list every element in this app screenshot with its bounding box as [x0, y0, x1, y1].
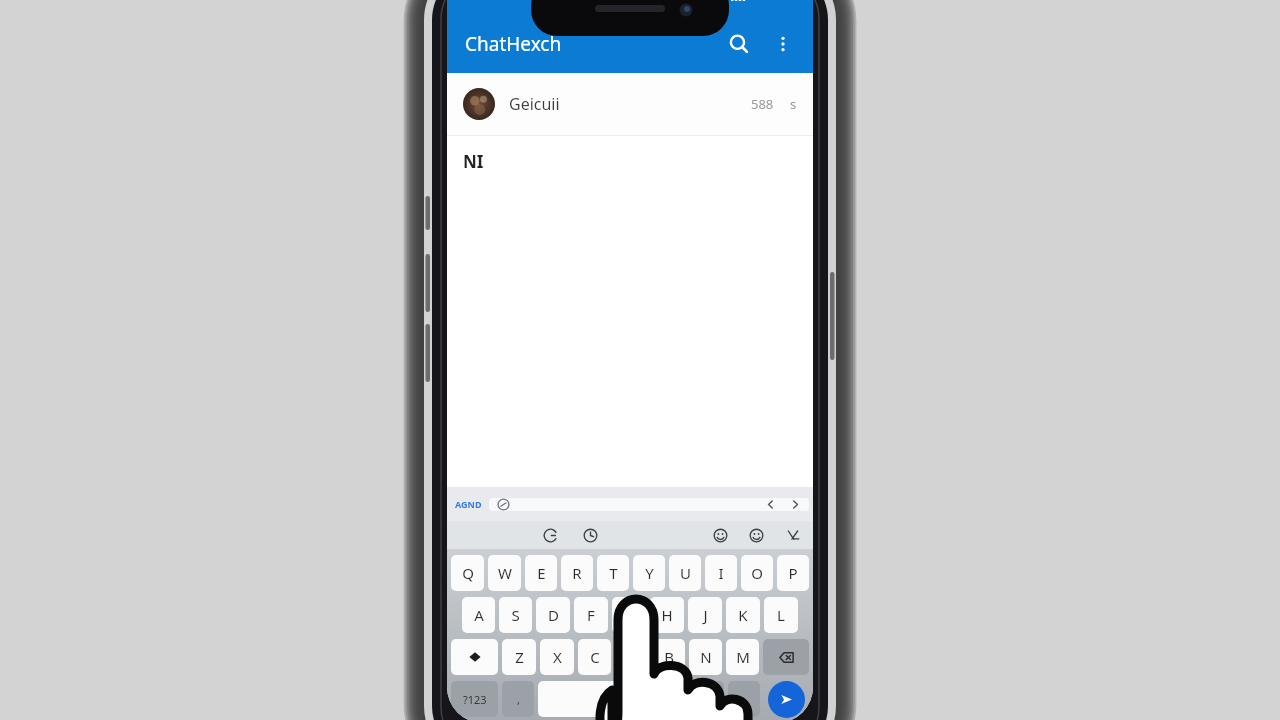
staticText: L [777, 605, 785, 625]
staticText: s [790, 95, 797, 113]
staticText: T [609, 563, 618, 583]
button[interactable]: Backspace [763, 639, 809, 675]
button[interactable]: Y [633, 555, 665, 591]
button[interactable]: GIF [539, 524, 561, 546]
button[interactable]: U [669, 555, 701, 591]
button[interactable]: Period [692, 681, 724, 717]
button[interactable]: Q [451, 555, 484, 591]
staticText: B [664, 647, 674, 667]
staticText: J [703, 605, 708, 625]
staticText: P [788, 563, 798, 583]
staticText: Geicuii [509, 93, 560, 115]
staticText: U [680, 563, 691, 583]
staticText: G [624, 605, 635, 625]
button[interactable]: G [612, 597, 646, 633]
staticText: F [587, 605, 595, 625]
button[interactable]: Input language [447, 487, 489, 521]
button[interactable]: V [615, 639, 648, 675]
button[interactable]: Shift [451, 639, 498, 675]
button[interactable]: Search [717, 22, 761, 66]
button[interactable]: D [536, 597, 570, 633]
button[interactable]: W [488, 555, 521, 591]
button[interactable]: M [726, 639, 759, 675]
staticText: N [700, 647, 712, 667]
button[interactable]: J [688, 597, 722, 633]
button[interactable]: L [764, 597, 798, 633]
staticText: K [738, 605, 748, 625]
staticText: A [474, 605, 484, 625]
button[interactable] [489, 498, 809, 511]
button[interactable]: P [777, 555, 809, 591]
button[interactable]: Z [502, 639, 536, 675]
staticText: Z [515, 647, 524, 667]
staticText: H [661, 605, 673, 625]
button[interactable]: E [525, 555, 557, 591]
staticText: D [548, 605, 559, 625]
button[interactable]: More options [761, 22, 805, 66]
staticText: Y [645, 563, 654, 583]
staticText: O [751, 563, 763, 583]
button[interactable]: X [540, 639, 574, 675]
button[interactable]: C [578, 639, 611, 675]
button[interactable]: F [574, 597, 608, 633]
staticText: ?123 [463, 692, 487, 707]
button[interactable]: Geicuii [447, 73, 813, 135]
staticText: ChatHexch [465, 31, 562, 57]
button[interactable]: Symbols [451, 681, 498, 717]
button[interactable]: O [741, 555, 773, 591]
staticText: M [736, 647, 750, 667]
staticText: NI [463, 150, 484, 173]
button[interactable]: Recent [579, 524, 601, 546]
button[interactable]: B [652, 639, 685, 675]
button[interactable]: R [561, 555, 593, 591]
button[interactable]: T [597, 555, 629, 591]
staticText: X [553, 647, 562, 667]
button[interactable]: K [726, 597, 760, 633]
button[interactable]: Emoji [745, 524, 767, 546]
staticText: W [498, 563, 512, 583]
staticText: C [590, 647, 600, 667]
button[interactable]: Stickers [709, 524, 731, 546]
staticText: Q [462, 563, 474, 583]
button[interactable]: A [462, 597, 495, 633]
button[interactable]: I [705, 555, 737, 591]
button[interactable]: Comma [502, 681, 534, 717]
button[interactable]: S [499, 597, 532, 633]
staticText: S [511, 605, 520, 625]
staticText: AGND [455, 498, 482, 510]
button[interactable]: Space [538, 681, 688, 717]
button[interactable]: Send [768, 681, 805, 718]
staticText: , [517, 692, 520, 707]
staticText: I [718, 563, 724, 583]
button[interactable]: H [650, 597, 684, 633]
staticText: E [537, 563, 546, 583]
staticText: R [572, 563, 582, 583]
staticText: 588 [751, 95, 774, 113]
button[interactable]: N [689, 639, 722, 675]
button[interactable]: More [781, 524, 803, 546]
button[interactable]: Emoji [728, 681, 760, 717]
